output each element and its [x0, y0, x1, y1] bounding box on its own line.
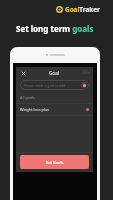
button[interactable]: Delete goal [85, 107, 90, 112]
staticText: Set long term goals [16, 23, 94, 34]
button[interactable]: GoalTraker [56, 5, 100, 14]
button[interactable]: Set Goals [20, 155, 89, 169]
staticText: Goal [49, 70, 60, 76]
button[interactable]: Edit [83, 70, 90, 75]
staticText: Set Goals [46, 160, 64, 165]
staticText: Weight loss plan [20, 107, 50, 112]
staticText: GoalTraker [65, 5, 100, 14]
staticText: All goals [20, 95, 35, 100]
button[interactable] [20, 80, 89, 90]
button[interactable]: Weight loss plan [16, 104, 93, 115]
staticText: Please enter a goal to add [24, 83, 66, 88]
button[interactable]: Close [19, 69, 27, 77]
